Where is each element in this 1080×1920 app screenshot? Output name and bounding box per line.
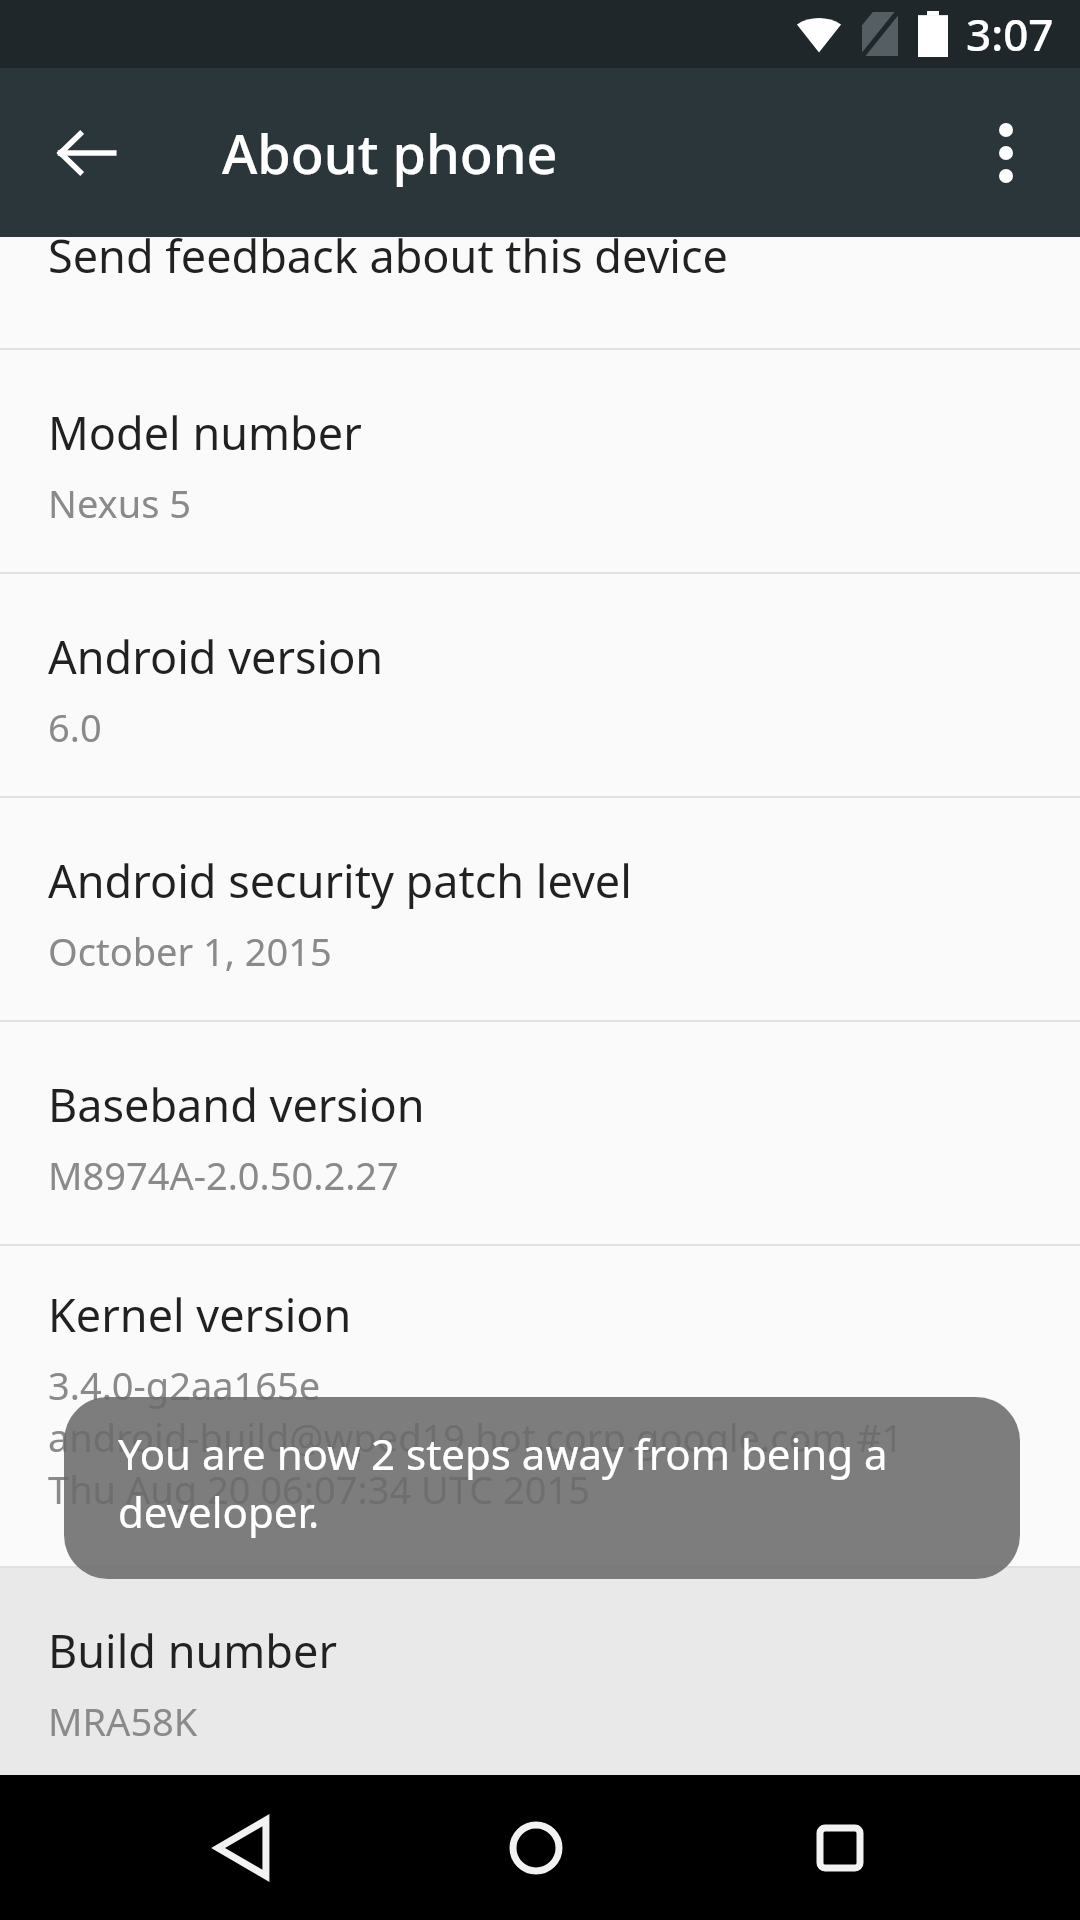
staticText: Android security patch level (48, 850, 632, 911)
staticText: Kernel version (48, 1284, 352, 1345)
staticText: Send feedback about this device (48, 225, 728, 286)
staticText: About phone (222, 116, 558, 190)
staticText: 3.4.0-g2aa165e android-build@wped19.hot.… (48, 1359, 904, 1515)
button[interactable]: Home (466, 1778, 606, 1918)
staticText: 3:07 (966, 4, 1054, 64)
button[interactable]: Back (172, 1778, 312, 1918)
staticText: October 1, 2015 (48, 925, 332, 977)
button[interactable]: More options (948, 95, 1064, 211)
button[interactable]: Kernel version (0, 1246, 1080, 1566)
staticText: Baseband version (48, 1074, 425, 1135)
button[interactable]: Back (28, 95, 144, 211)
button[interactable]: Baseband version (0, 1022, 1080, 1244)
staticText: 6.0 (48, 701, 102, 753)
button[interactable]: Model number (0, 350, 1080, 572)
staticText: You are now 2 steps away from being a de… (118, 1425, 910, 1540)
staticText: MRA58K (48, 1695, 198, 1747)
staticText: M8974A-2.0.50.2.27 (48, 1149, 399, 1201)
button[interactable]: Recent apps (770, 1778, 910, 1918)
button[interactable]: Android security patch level (0, 798, 1080, 1020)
staticText: Android version (48, 626, 384, 687)
staticText: Build number (48, 1620, 337, 1681)
staticText: Model number (48, 402, 362, 463)
button[interactable]: Build number (0, 1568, 1080, 1775)
staticText: Nexus 5 (48, 477, 191, 529)
button[interactable]: Android version (0, 574, 1080, 796)
button[interactable]: Send feedback about this device (0, 237, 1080, 348)
